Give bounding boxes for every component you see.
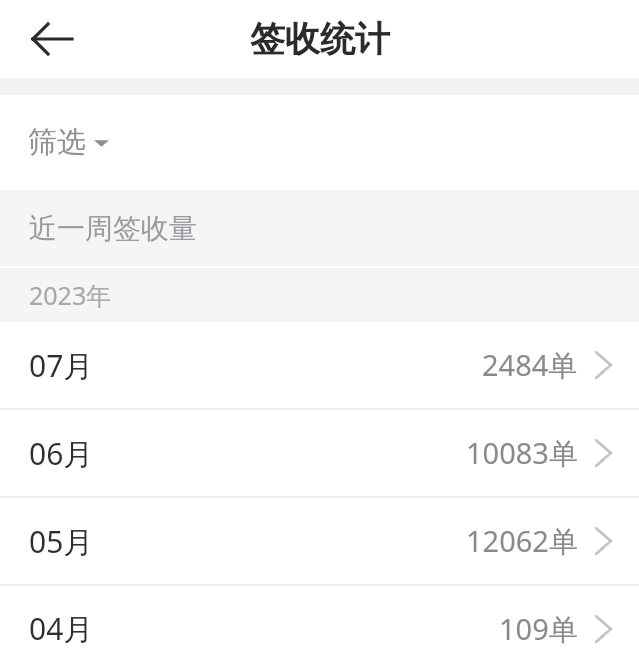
staticText: 近一周签收量 [29,211,197,246]
staticText: 07月 [29,345,94,386]
button[interactable]: 06月 [0,410,639,496]
staticText: 06月 [29,433,94,474]
button[interactable]: 筛选 [28,124,109,161]
staticText: 签收统计 [250,17,390,61]
staticText: 05月 [29,521,94,562]
staticText: 筛选 [28,124,86,161]
button[interactable]: 05月 [0,498,639,584]
staticText: 2484单 [482,345,578,385]
button[interactable]: Back [14,8,90,70]
button[interactable]: 07月 [0,322,639,408]
staticText: 2023年 [29,278,112,312]
staticText: 10083单 [466,433,578,473]
staticText: 109单 [499,609,578,649]
staticText: 12062单 [466,521,578,561]
staticText: 04月 [29,608,94,649]
button[interactable]: 04月 [0,586,639,671]
